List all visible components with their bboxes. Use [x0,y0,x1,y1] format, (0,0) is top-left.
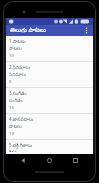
staticText: 10 [9,53,14,59]
staticText: 9 [9,79,12,85]
staticText: కీర్తన [9,150,18,152]
staticText: 19 [9,131,14,137]
staticText: పాటలు [9,124,22,130]
button[interactable]: 4.జానపదాలు [6,114,93,139]
button[interactable]: 2.సినిమాలు [6,62,93,87]
staticText: 3.సంగీతం [9,90,27,97]
staticText: పాటలు [9,46,22,52]
staticText: తెలుగు పాటలు [10,26,81,35]
staticText: 1.పాటలు [9,38,26,45]
staticText: 15 [9,105,14,111]
staticText: సంగీతం [9,98,23,104]
button[interactable]: 1.పాటలు [6,36,93,61]
button[interactable]: 5.భక్తి గీతాలు [6,140,93,154]
staticText: 4.జానపదాలు [9,116,34,123]
button[interactable]: Back [17,154,30,167]
staticText: 5.భక్తి గీతాలు [9,142,32,149]
button[interactable]: Recent apps [69,154,82,167]
button[interactable]: More options [81,25,92,36]
staticText: సినిమాలు [9,72,27,78]
button[interactable]: Home [43,154,56,167]
button[interactable]: 3.సంగీతం [6,88,93,113]
staticText: 2.సినిమాలు [9,64,31,71]
